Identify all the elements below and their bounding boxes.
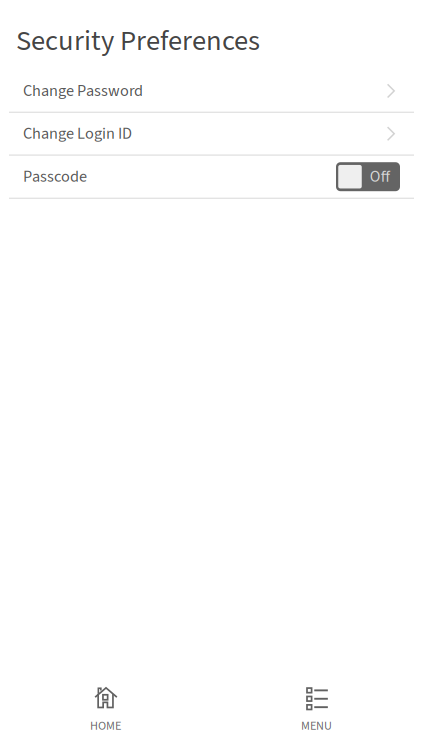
staticText: Off [370,165,390,188]
button[interactable]: Change Password [0,70,422,112]
staticText: Change Login ID [23,122,132,145]
staticText: Change Password [23,79,143,102]
button[interactable]: Change Login ID [0,113,422,154]
button[interactable]: Passcode, Off [336,162,400,191]
staticText: Security Preferences [16,21,260,61]
button[interactable]: HOME [0,685,211,735]
staticText: MENU [301,717,332,735]
staticText: Passcode [23,165,87,188]
staticText: HOME [90,717,121,735]
button[interactable]: MENU [211,685,422,735]
